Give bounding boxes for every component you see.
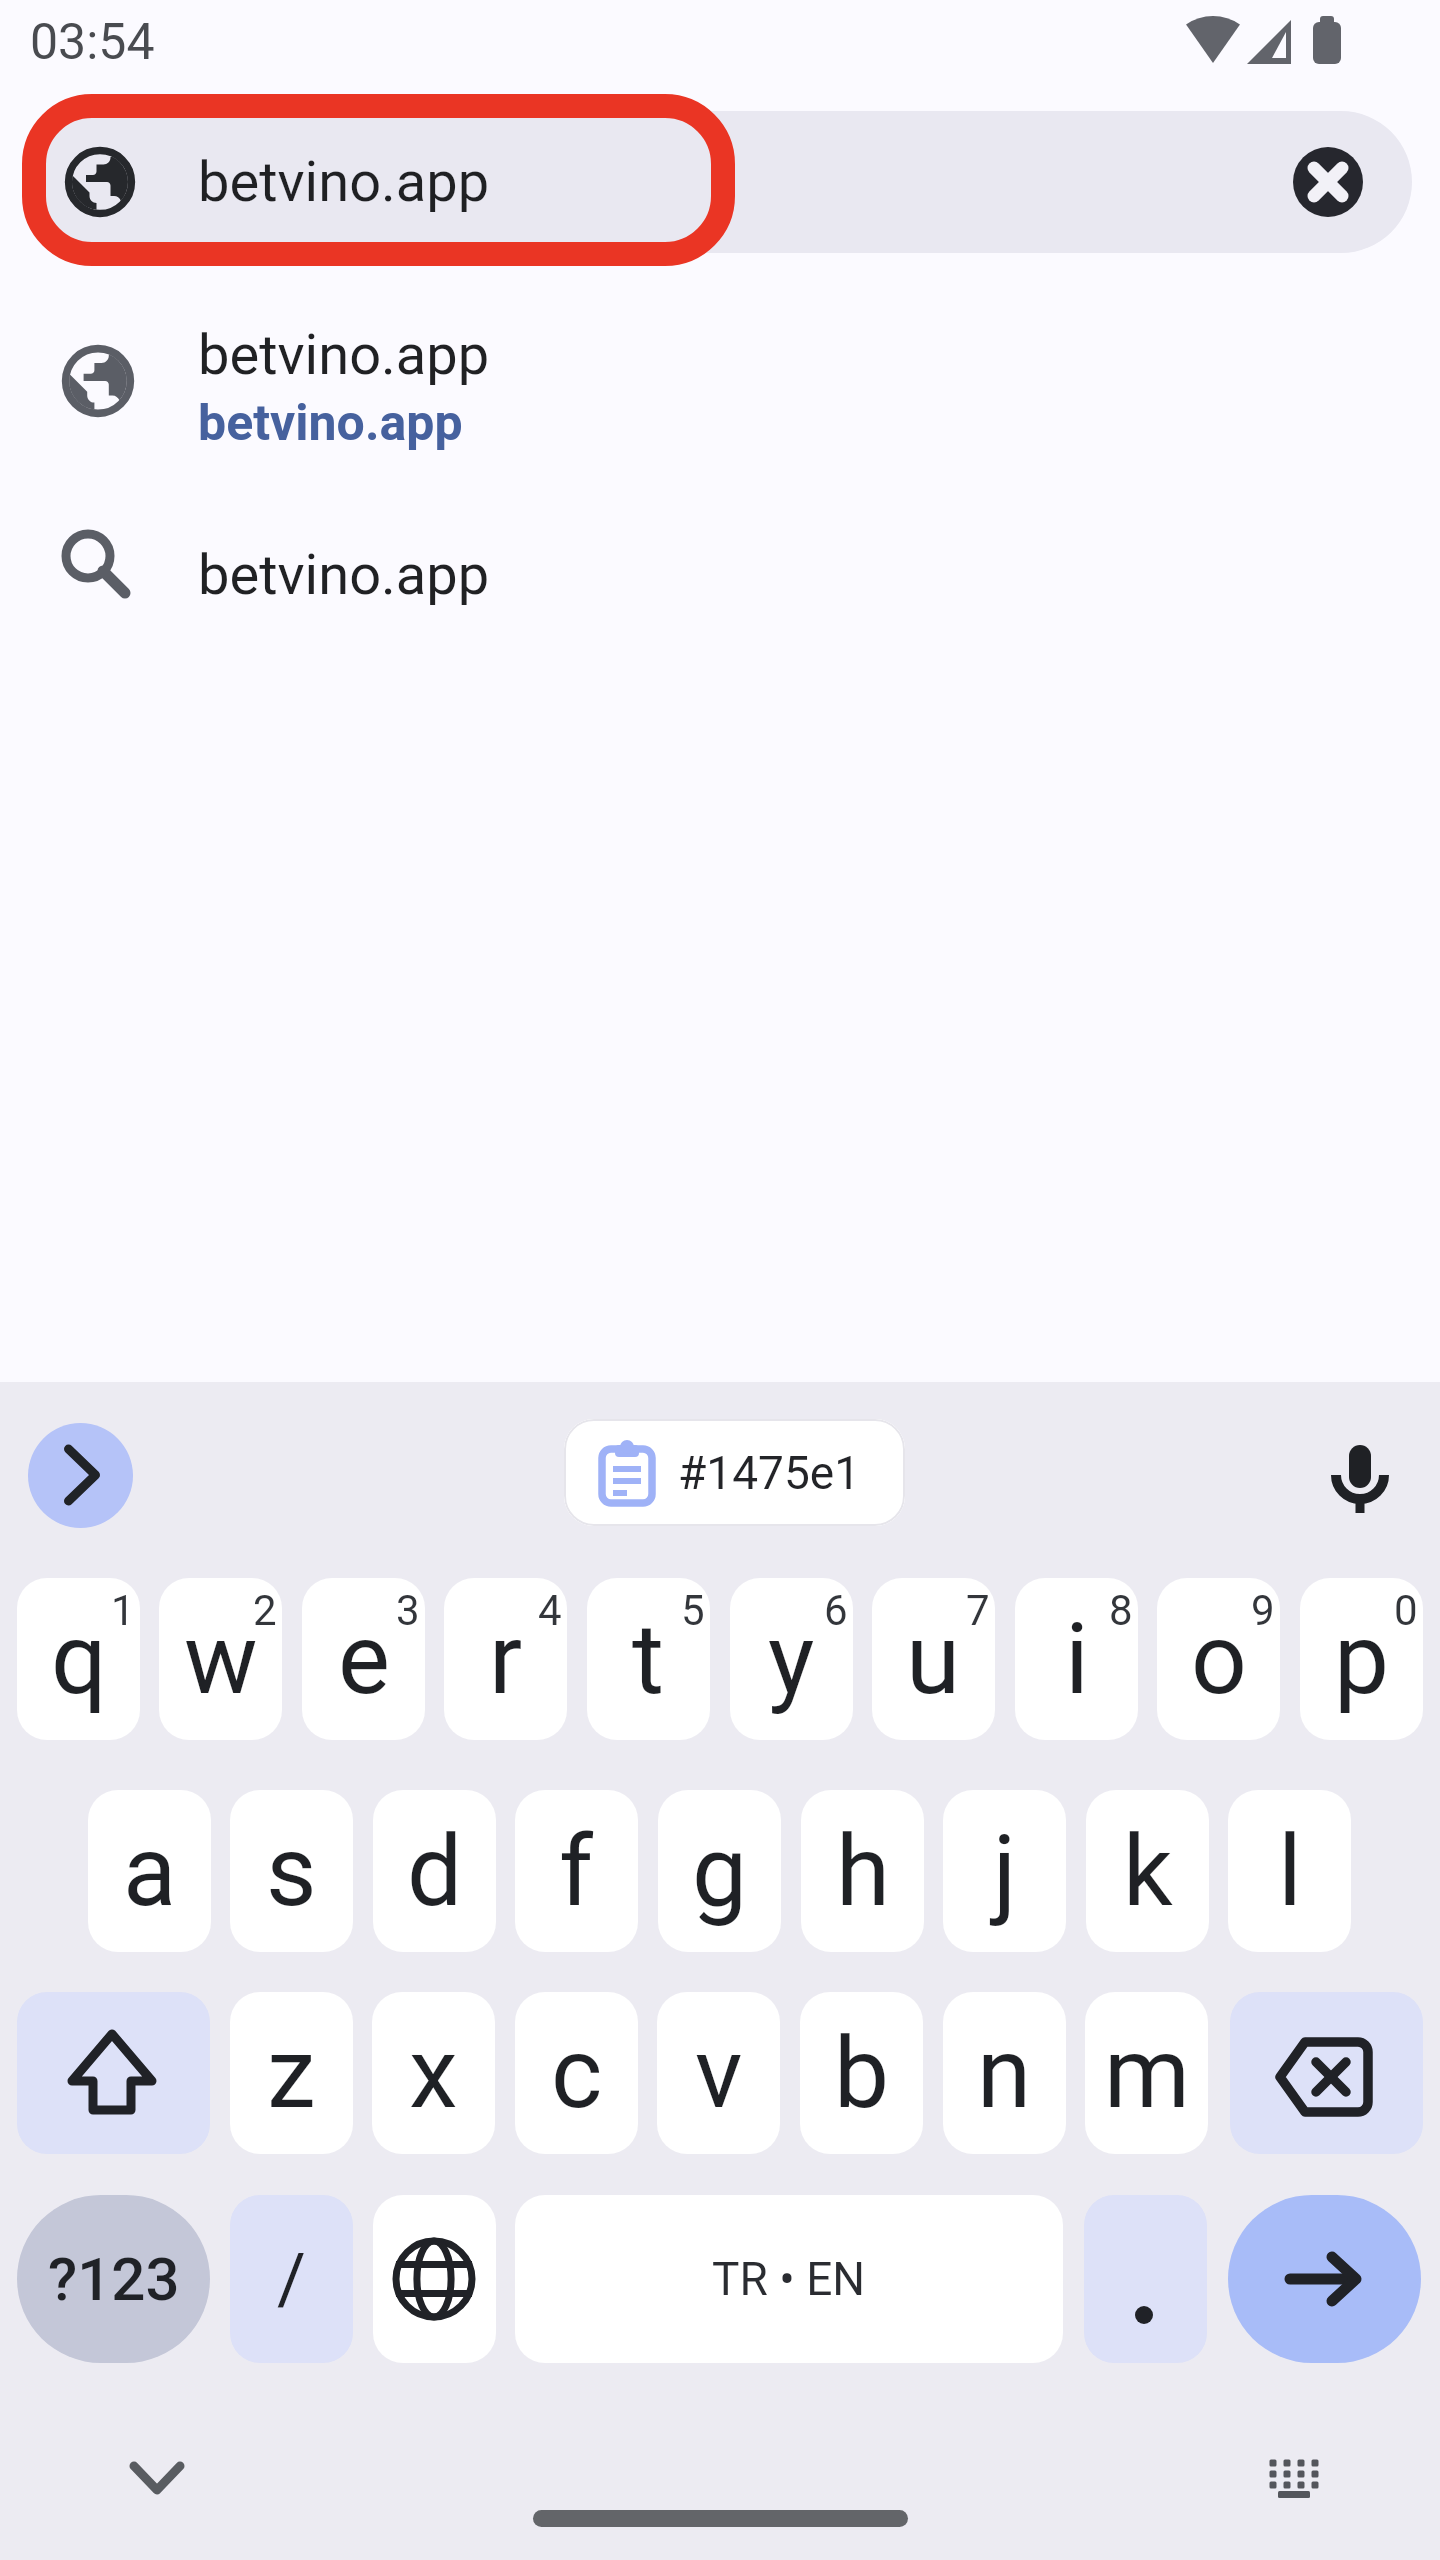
button[interactable]: s [230,1790,353,1952]
button[interactable] [373,2195,496,2363]
button[interactable]: u [872,1578,995,1740]
button[interactable]: #1475e1 [564,1419,905,1526]
staticText: 9 [1251,1586,1275,1635]
button[interactable]: d [373,1790,496,1952]
staticText: betvino.app [198,394,463,453]
button[interactable] [28,1423,133,1528]
button[interactable]: b [800,1992,923,2154]
button[interactable]: l [1228,1790,1351,1952]
button[interactable]: / [230,2195,353,2363]
staticText: h [836,1814,890,1929]
staticText: x [409,2016,458,2131]
button[interactable]: y [730,1578,853,1740]
staticText: d [407,1814,463,1929]
button[interactable]: r [444,1578,567,1740]
button[interactable]: j [943,1790,1066,1952]
staticText: 8 [1109,1586,1133,1635]
staticText: 2 [253,1586,277,1635]
button[interactable]: betvino.app [28,111,1412,253]
button[interactable]: e [302,1578,425,1740]
button[interactable]: v [657,1992,780,2154]
staticText: betvino.app [198,149,490,215]
button[interactable] [1230,1992,1423,2154]
button[interactable] [1244,2428,1344,2528]
button[interactable]: p [1300,1578,1423,1740]
staticText: b [834,2016,890,2131]
staticText: 03:54 [30,13,155,72]
staticText: a [123,1814,177,1929]
button[interactable]: t [587,1578,710,1740]
button[interactable]: n [943,1992,1066,2154]
staticText: t [632,1602,665,1717]
staticText: g [692,1814,748,1929]
staticText: v [695,2016,743,2131]
button[interactable]: f [515,1790,638,1952]
button[interactable]: m [1085,1992,1208,2154]
button[interactable]: k [1086,1790,1209,1952]
staticText: 3 [396,1586,420,1635]
staticText: betvino.app [198,542,490,608]
button[interactable] [1293,147,1363,217]
button[interactable]: i [1015,1578,1138,1740]
staticText: w [184,1602,258,1717]
staticText: #1475e1 [678,1446,860,1500]
staticText: ?123 [48,2244,180,2314]
staticText: 4 [538,1586,562,1635]
staticText: y [768,1602,815,1717]
staticText: s [266,1814,317,1929]
staticText: c [551,2016,603,2131]
staticText: 7 [966,1586,990,1635]
button[interactable]: z [230,1992,353,2154]
button[interactable]: w [159,1578,282,1740]
button[interactable]: o [1157,1578,1280,1740]
button[interactable] [1310,1424,1410,1524]
staticText: f [559,1814,594,1929]
staticText: p [1334,1602,1390,1717]
button[interactable] [1228,2195,1421,2363]
button[interactable]: ?123 [17,2195,210,2363]
staticText: o [1191,1602,1247,1717]
staticText: 1 [111,1586,135,1635]
staticText: e [338,1602,390,1717]
button[interactable]: betvino.app [0,290,1440,472]
button[interactable]: q [17,1578,140,1740]
staticText: 0 [1394,1586,1418,1635]
staticText: j [993,1814,1017,1929]
staticText: m [1104,2016,1190,2131]
staticText: / [277,2238,306,2320]
staticText: TR • EN [712,2252,866,2306]
staticText: z [267,2016,316,2131]
staticText: q [51,1602,107,1717]
staticText: k [1123,1814,1173,1929]
button[interactable]: a [88,1790,211,1952]
staticText: i [1065,1602,1089,1717]
staticText: 6 [824,1586,848,1635]
staticText: betvino.app [198,322,490,388]
staticText: n [977,2016,1032,2131]
staticText: r [489,1602,523,1717]
button[interactable] [1084,2195,1207,2363]
button[interactable]: betvino.app [0,520,1440,632]
button[interactable]: g [658,1790,781,1952]
staticText: 5 [681,1586,705,1635]
button[interactable] [107,2428,207,2528]
button[interactable]: TR • EN [515,2195,1063,2363]
button[interactable]: c [515,1992,638,2154]
button[interactable] [17,1992,210,2154]
staticText: u [906,1602,961,1717]
staticText: l [1278,1814,1302,1929]
button[interactable]: h [801,1790,924,1952]
button[interactable]: x [372,1992,495,2154]
